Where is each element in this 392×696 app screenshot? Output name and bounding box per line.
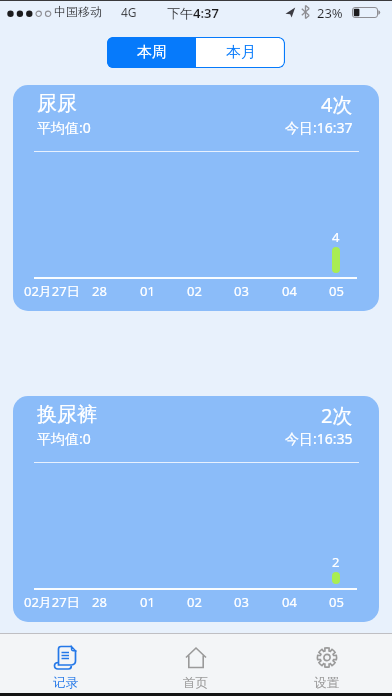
staticText: 02 [187,282,202,300]
button[interactable]: 设置 [261,634,392,693]
staticText: 2次 [321,402,353,429]
staticText: 尿尿 [37,91,77,116]
staticText: 设置 [314,675,339,691]
staticText: 02月27日 [24,593,80,611]
staticText: 4次 [321,91,353,118]
button[interactable]: 记录 [0,634,130,693]
staticText: 平均值:0 [37,429,91,448]
staticText: 换尿裤 [37,402,97,427]
staticText: 04 [282,282,297,300]
staticText: 2 [332,553,340,571]
staticText: 03 [234,282,249,300]
staticText: 本月 [226,43,256,62]
staticText: 记录 [53,675,78,691]
staticText: 23% [317,4,343,22]
staticText: 01 [140,282,155,300]
button[interactable]: 本周 [107,37,196,68]
staticText: 首页 [183,675,208,691]
button[interactable]: 本月 [196,37,285,68]
staticText: 05 [329,593,344,611]
staticText: 05 [329,282,344,300]
staticText: 01 [140,593,155,611]
staticText: 4G [121,4,137,20]
staticText: 本周 [137,43,167,62]
staticText: 02 [187,593,202,611]
staticText: 04 [282,593,297,611]
staticText: 下午4:37 [167,4,219,22]
button[interactable]: 尿尿 [13,85,379,311]
button[interactable]: 首页 [130,634,261,693]
staticText: 今日:16:37 [285,118,353,137]
staticText: 4 [332,228,340,246]
staticText: 平均值:0 [37,118,91,137]
staticText: 28 [92,593,107,611]
staticText: 03 [234,593,249,611]
staticText: 02月27日 [24,282,80,300]
staticText: 28 [92,282,107,300]
button[interactable]: 换尿裤 [13,396,379,622]
staticText: 中国移动 [54,4,102,19]
staticText: 今日:16:35 [285,429,353,448]
